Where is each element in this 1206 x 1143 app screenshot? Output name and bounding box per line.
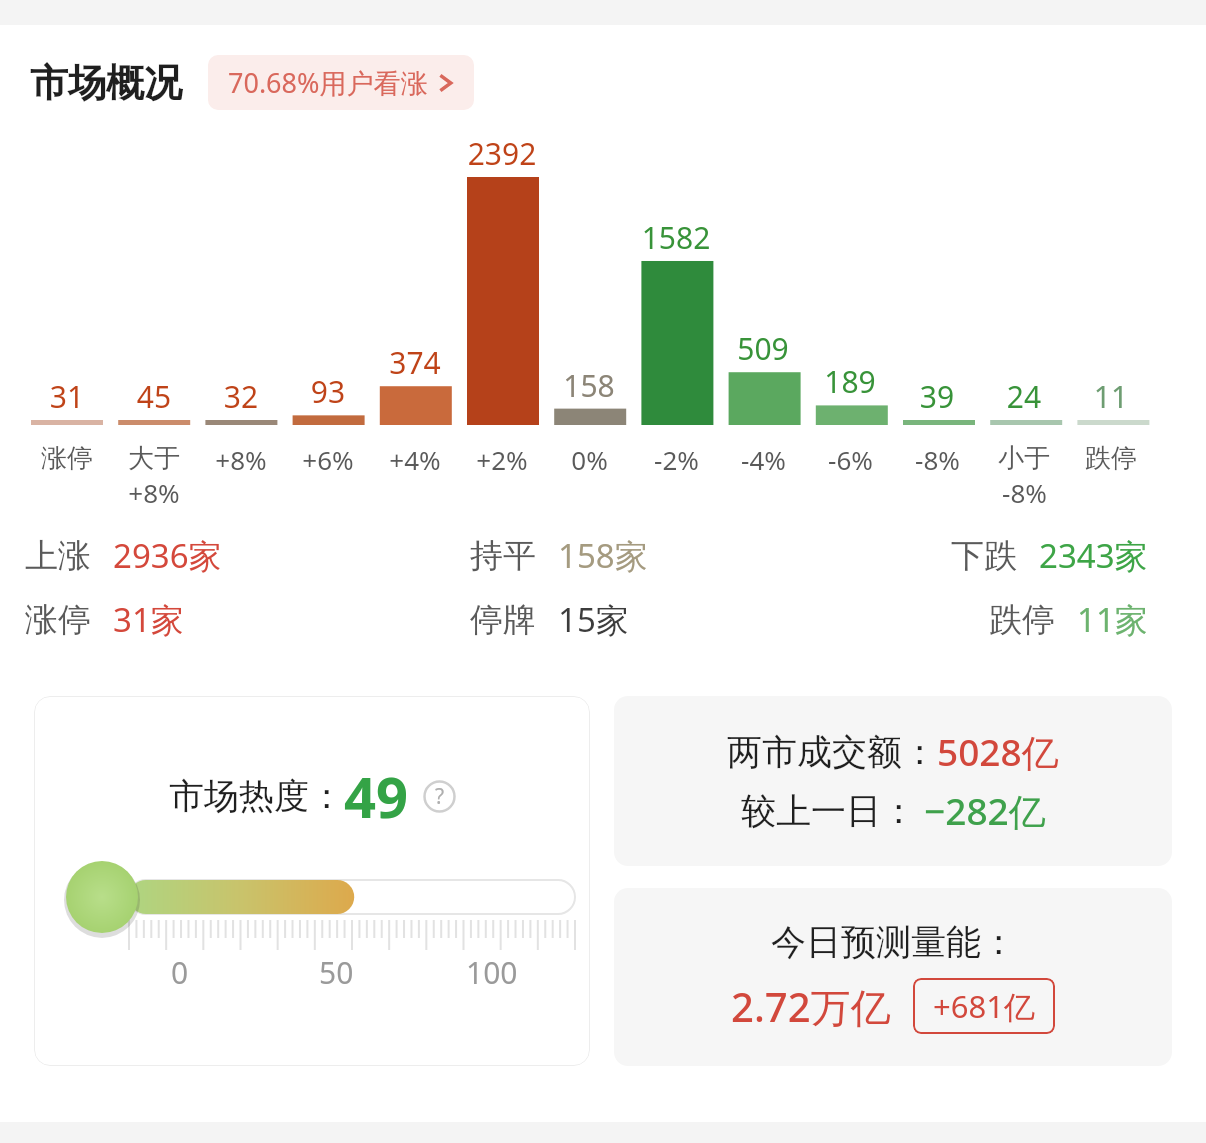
staticText: 持平 xyxy=(470,535,536,577)
staticText: 24 xyxy=(988,376,1060,417)
staticText: 今日预测量能： xyxy=(771,920,1016,964)
staticText: 31家 xyxy=(113,597,184,642)
staticText: 11家 xyxy=(1077,597,1148,642)
staticText: 93 xyxy=(292,371,364,412)
staticText: -8% xyxy=(1002,475,1047,510)
staticText: 100 xyxy=(466,952,518,993)
staticText: 0% xyxy=(571,442,608,477)
staticText: 70.68%用户看涨 xyxy=(228,64,428,101)
staticText: -6% xyxy=(828,442,873,477)
staticText: -8% xyxy=(915,442,960,477)
button[interactable]: 帮助 xyxy=(423,780,456,813)
staticText: 小于 xyxy=(998,442,1050,475)
staticText: 涨停 xyxy=(41,442,93,475)
staticText: 32 xyxy=(205,376,277,417)
staticText: 涨停 xyxy=(25,599,91,641)
staticText: 大于 xyxy=(128,442,180,475)
staticText: 市场热度： xyxy=(169,774,344,818)
staticText: 跌停 xyxy=(989,599,1055,641)
button[interactable]: 两市成交额： xyxy=(614,696,1172,866)
staticText: 两市成交额： xyxy=(727,730,937,774)
staticText: 2936家 xyxy=(113,533,222,578)
staticText: 509 xyxy=(727,328,799,369)
staticText: +2% xyxy=(476,442,528,477)
staticText: +8% xyxy=(215,442,267,477)
staticText: 158家 xyxy=(558,533,648,578)
staticText: 39 xyxy=(901,376,973,417)
staticText: 189 xyxy=(814,361,886,402)
staticText: +4% xyxy=(389,442,441,477)
staticText: +8% xyxy=(128,475,180,510)
staticText: -2% xyxy=(654,442,699,477)
staticText: −282亿 xyxy=(924,785,1046,836)
staticText: 0 xyxy=(171,952,189,993)
staticText: 2343家 xyxy=(1039,533,1148,578)
staticText: 较上一日： xyxy=(741,789,916,833)
staticText: 跌停 xyxy=(1085,442,1137,475)
staticText: ? xyxy=(435,782,445,811)
button[interactable]: 今日预测量能： xyxy=(614,888,1172,1066)
staticText: 49 xyxy=(344,758,409,834)
staticText: 11 xyxy=(1075,376,1147,417)
staticText: 5028亿 xyxy=(937,726,1059,777)
staticText: -4% xyxy=(741,442,786,477)
staticText: 45 xyxy=(118,376,190,417)
staticText: 31 xyxy=(31,376,103,417)
staticText: 15家 xyxy=(558,597,629,642)
staticText: 2392 xyxy=(466,133,538,174)
button[interactable]: 70.68%用户看涨 xyxy=(208,55,474,110)
staticText: 停牌 xyxy=(470,599,536,641)
staticText: +681亿 xyxy=(933,985,1035,1027)
staticText: 下跌 xyxy=(951,535,1017,577)
staticText: 158 xyxy=(553,365,625,406)
staticText: 1582 xyxy=(640,217,712,258)
staticText: +6% xyxy=(302,442,354,477)
staticText: 上涨 xyxy=(25,535,91,577)
button[interactable]: 市场热度： xyxy=(34,696,590,1066)
staticText: 2.72万亿 xyxy=(731,979,891,1034)
staticText: 374 xyxy=(379,342,451,383)
staticText: 市场概况 xyxy=(30,59,182,107)
staticText: 50 xyxy=(319,952,354,993)
